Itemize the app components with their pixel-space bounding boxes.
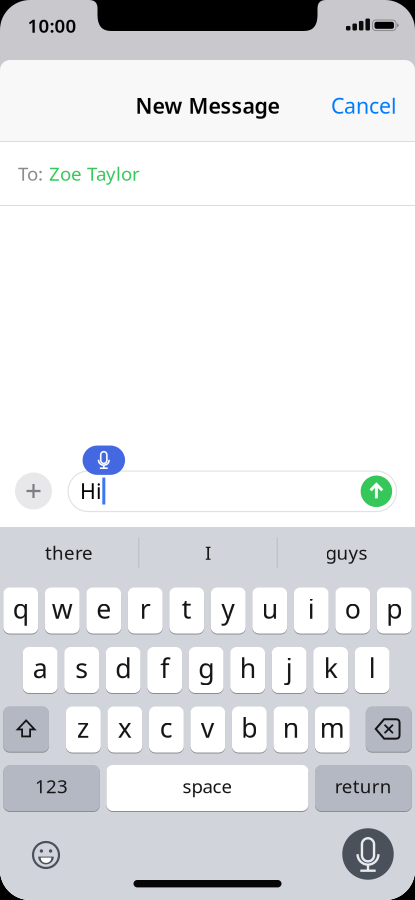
button[interactable]: h <box>230 647 265 693</box>
button[interactable]: w <box>45 587 80 633</box>
staticText: n <box>283 710 299 745</box>
button[interactable]: d <box>106 647 141 693</box>
button[interactable]: b <box>232 706 267 752</box>
button[interactable]: return <box>315 765 412 811</box>
button[interactable]: Delete <box>366 706 412 752</box>
button[interactable]: Dictate <box>342 828 394 880</box>
staticText: v <box>201 710 215 745</box>
button[interactable]: Dictation <box>82 446 125 475</box>
button[interactable]: there <box>0 0 415 900</box>
button[interactable]: x <box>107 706 142 752</box>
button[interactable]: Cancel <box>0 0 415 900</box>
button[interactable]: j <box>272 647 307 693</box>
button[interactable]: r <box>128 587 163 633</box>
staticText: t <box>182 591 192 626</box>
staticText: p <box>386 591 402 626</box>
button[interactable]: I <box>0 0 415 900</box>
staticText: 123 <box>35 774 68 798</box>
button[interactable]: e <box>86 587 121 633</box>
button[interactable]: z <box>66 706 101 752</box>
staticText: q <box>13 591 29 626</box>
staticText: z <box>77 710 90 745</box>
staticText: b <box>241 710 257 745</box>
button[interactable]: l <box>355 647 390 693</box>
button[interactable]: v <box>190 706 225 752</box>
button[interactable]: o <box>335 587 370 633</box>
button[interactable]: u <box>252 587 287 633</box>
button[interactable]: guys <box>0 0 415 900</box>
staticText: return <box>335 774 392 798</box>
button[interactable]: f <box>147 647 182 693</box>
staticText: Zoe Taylor <box>49 161 140 186</box>
button[interactable]: c <box>149 706 184 752</box>
staticText: h <box>240 650 256 686</box>
staticText: New Message <box>135 91 279 120</box>
button[interactable]: k <box>313 647 348 693</box>
button[interactable]: q <box>3 587 38 633</box>
button[interactable]: g <box>189 647 224 693</box>
staticText: a <box>33 650 48 686</box>
button[interactable]: a <box>23 647 58 693</box>
staticText: y <box>221 591 235 626</box>
staticText: To: <box>18 161 43 186</box>
staticText: f <box>160 650 169 686</box>
button[interactable]: Send <box>361 476 392 507</box>
button[interactable]: Add attachment <box>15 472 52 509</box>
button[interactable]: p <box>377 587 412 633</box>
button[interactable]: y <box>211 587 246 633</box>
staticText: Cancel <box>331 91 397 120</box>
staticText: I <box>205 540 211 565</box>
button[interactable]: space <box>106 765 308 811</box>
staticText: space <box>182 774 232 798</box>
staticText: o <box>345 591 361 626</box>
staticText: c <box>160 710 173 745</box>
staticText: r <box>140 591 151 626</box>
staticText: 10:00 <box>27 13 76 38</box>
button[interactable]: To: <box>0 0 415 900</box>
staticText: x <box>118 710 132 745</box>
staticText: j <box>286 650 293 686</box>
staticText: there <box>45 540 93 565</box>
button[interactable]: s <box>64 647 99 693</box>
button[interactable]: Emoji <box>23 832 69 878</box>
staticText: i <box>308 591 315 626</box>
staticText: u <box>262 591 278 626</box>
staticText: e <box>96 591 111 626</box>
staticText: k <box>324 650 338 686</box>
staticText: Hi <box>80 477 102 505</box>
staticText: s <box>75 650 88 686</box>
staticText: m <box>320 710 345 745</box>
button[interactable]: Shift <box>3 706 49 752</box>
button[interactable]: m <box>315 706 350 752</box>
staticText: w <box>52 591 73 626</box>
staticText: l <box>369 650 376 686</box>
staticText: d <box>115 650 131 686</box>
staticText: g <box>198 650 214 686</box>
button[interactable]: t <box>169 587 204 633</box>
button[interactable]: n <box>273 706 308 752</box>
staticText: guys <box>325 540 367 565</box>
button[interactable]: i <box>294 587 329 633</box>
button[interactable]: 123 <box>3 765 100 811</box>
